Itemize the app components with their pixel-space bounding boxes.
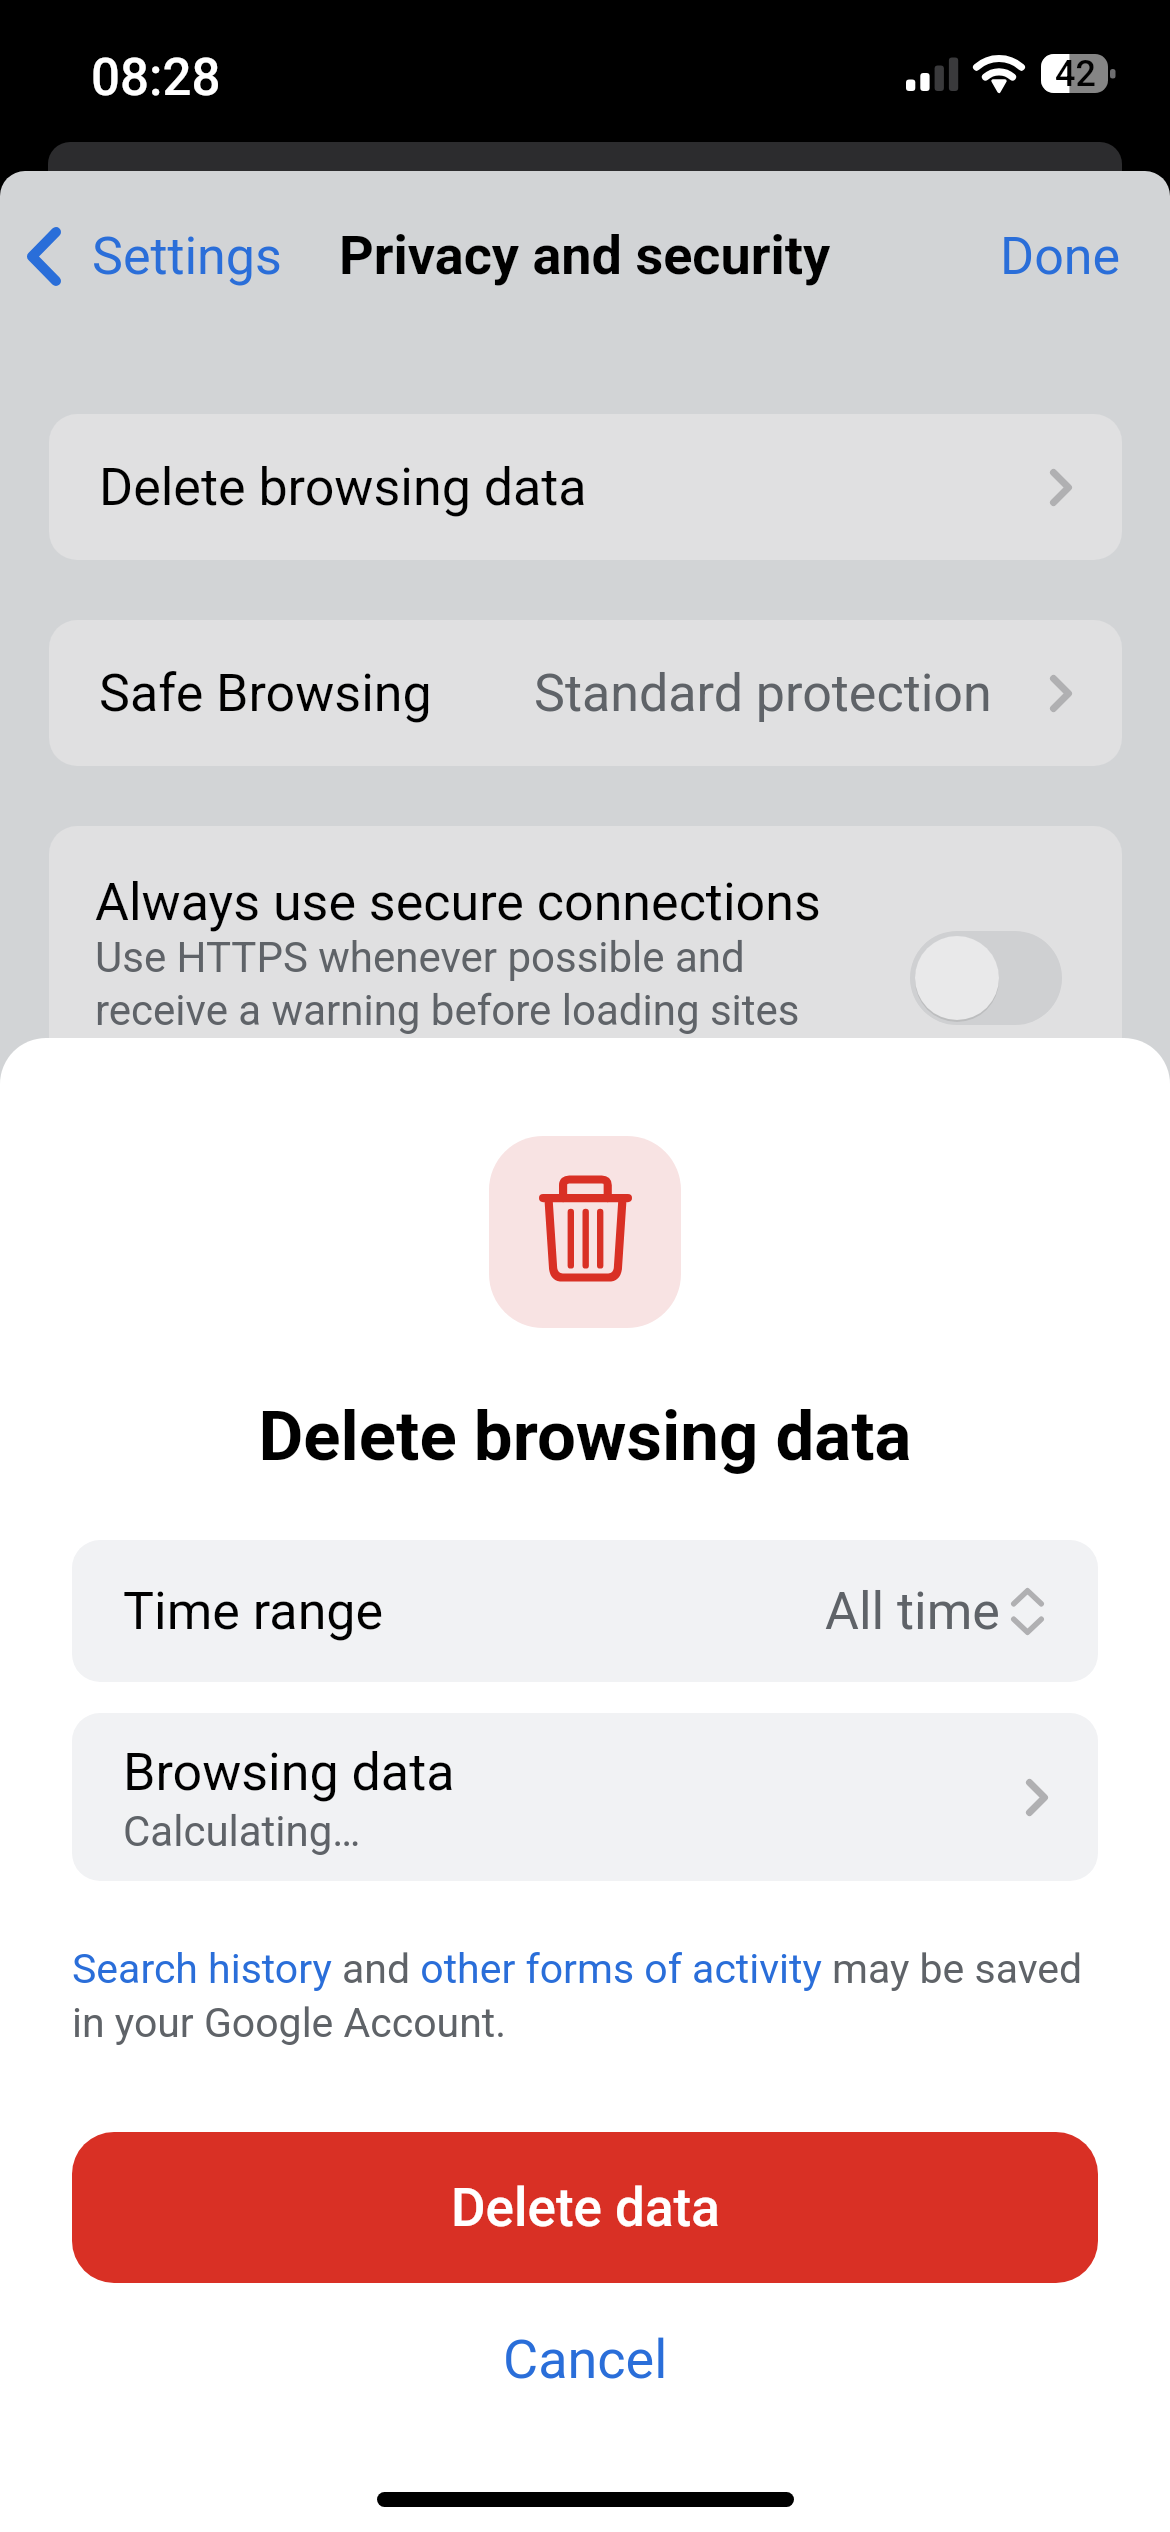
staticText: 08:28 bbox=[91, 48, 221, 108]
button[interactable]: Browsing data bbox=[72, 1713, 1098, 1881]
staticText: Cancel bbox=[503, 2328, 668, 2391]
button[interactable]: Safe Browsing bbox=[49, 620, 1122, 766]
staticText: 42 bbox=[1055, 53, 1096, 95]
staticText: Settings bbox=[92, 226, 282, 287]
staticText: Always use secure connections bbox=[95, 872, 821, 933]
button[interactable]: Delete data bbox=[72, 2132, 1098, 2283]
staticText: Delete browsing data bbox=[99, 457, 587, 518]
staticText: Safe Browsing bbox=[99, 663, 432, 724]
button[interactable]: Delete browsing data bbox=[49, 414, 1122, 560]
button[interactable]: Always use secure connections bbox=[49, 826, 1122, 1086]
staticText: Browsing data bbox=[123, 1742, 455, 1803]
staticText: Standard protection bbox=[534, 663, 992, 724]
staticText: Time range bbox=[123, 1581, 384, 1642]
button[interactable]: Done bbox=[952, 212, 1170, 301]
staticText: Delete data bbox=[451, 2177, 720, 2239]
staticText: Privacy and security bbox=[339, 224, 831, 287]
staticText: Done bbox=[1000, 226, 1121, 287]
staticText: Delete browsing data bbox=[0, 1396, 1170, 1477]
button[interactable]: Time range bbox=[72, 1540, 1098, 1682]
staticText: Use HTTPS whenever possible and receive … bbox=[95, 933, 800, 1035]
staticText: All time bbox=[825, 1581, 1000, 1642]
staticText: Search history and other forms of activi… bbox=[72, 1945, 1102, 2047]
button[interactable]: Cancel bbox=[433, 2290, 738, 2429]
staticText: Calculating… bbox=[123, 1807, 361, 1856]
button[interactable]: Always use secure connections toggle bbox=[910, 931, 1062, 1025]
button[interactable]: Settings bbox=[0, 214, 298, 299]
